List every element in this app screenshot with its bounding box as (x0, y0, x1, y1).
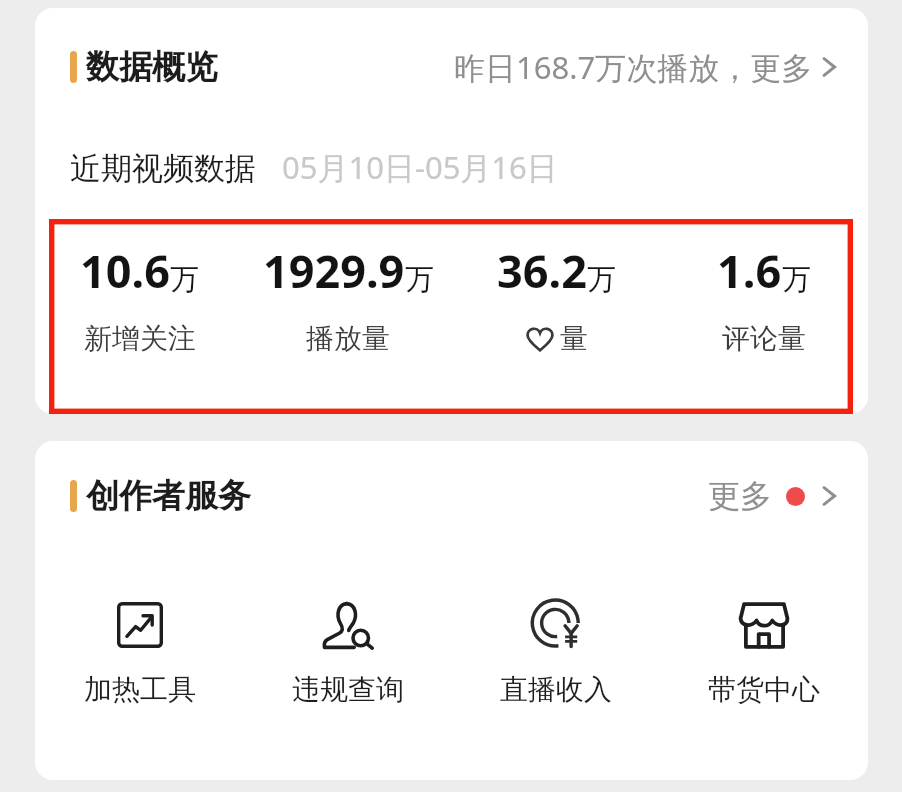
staticText: 更多 (708, 476, 772, 516)
staticText: 违规查询 (292, 672, 404, 707)
staticText: 加热工具 (84, 672, 196, 707)
button[interactable]: 直播收入 (452, 599, 660, 707)
staticText: 创作者服务 (86, 475, 251, 517)
staticText: 万 (170, 261, 199, 298)
staticText: 1929.9 (263, 240, 405, 301)
staticText: 播放量 (306, 321, 390, 356)
staticText: 近期视频数据 (70, 149, 256, 188)
staticText: 新增关注 (84, 321, 196, 356)
button[interactable]: 带货中心 (660, 599, 868, 707)
button[interactable]: 1929.9 (244, 240, 452, 356)
staticText: 评论量 (722, 321, 806, 356)
staticText: 1.6 (717, 240, 782, 301)
staticText: 数据概览 (86, 46, 218, 88)
button[interactable]: 数据概览 (35, 8, 868, 126)
button[interactable]: 36.2 (452, 240, 660, 356)
button[interactable]: 1.6 (660, 240, 868, 356)
staticText: 万 (405, 261, 434, 298)
staticText: 10.6 (80, 240, 170, 301)
staticText: 万 (587, 261, 616, 298)
staticText: 05月10日-05月16日 (282, 146, 558, 188)
button[interactable]: 加热工具 (35, 599, 244, 707)
staticText: 昨日168.7万次播放，更多 (454, 46, 813, 88)
staticText: 量 (560, 321, 588, 356)
staticText: 直播收入 (500, 672, 612, 707)
button[interactable]: 创作者服务 (35, 441, 868, 551)
button[interactable]: 10.6 (35, 240, 244, 356)
staticText: 万 (782, 261, 811, 298)
staticText: 36.2 (497, 240, 587, 301)
button[interactable]: 违规查询 (244, 599, 452, 707)
staticText: 带货中心 (708, 672, 820, 707)
